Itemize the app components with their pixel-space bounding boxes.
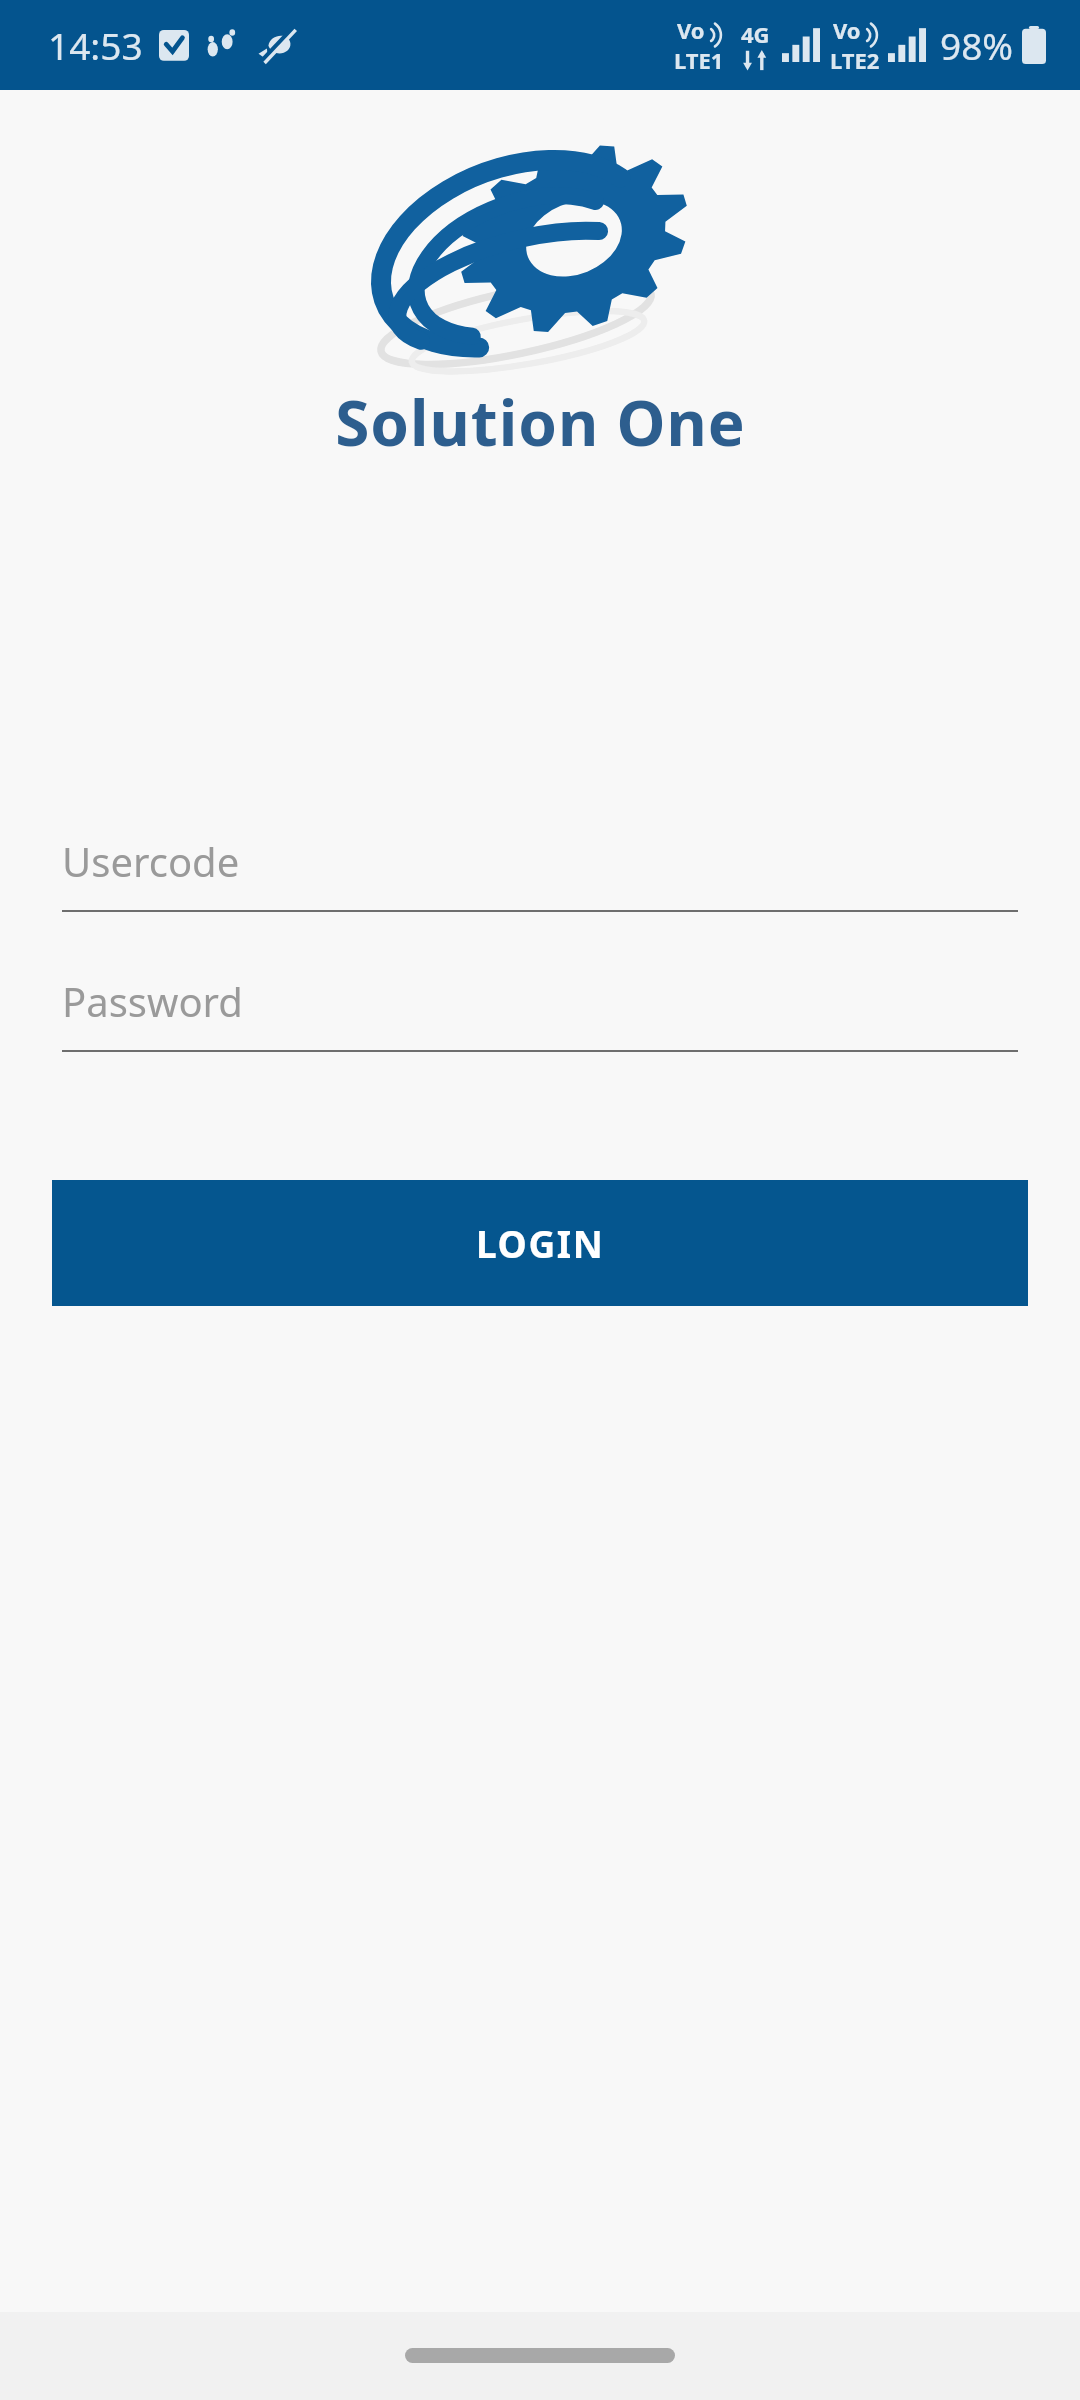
staticText: Solution One bbox=[335, 380, 746, 464]
staticText: LOGIN bbox=[476, 1218, 605, 1268]
staticText: LTE1 bbox=[674, 45, 724, 75]
button[interactable]: Usercode bbox=[62, 834, 1018, 912]
staticText: LTE2 bbox=[830, 45, 880, 75]
staticText: Password bbox=[62, 974, 243, 1028]
staticText: 14:53 bbox=[48, 20, 143, 70]
staticText: Vo bbox=[833, 15, 861, 45]
staticText: 4G bbox=[741, 19, 770, 49]
staticText: Vo bbox=[677, 15, 705, 45]
button[interactable]: Password bbox=[62, 974, 1018, 1052]
button[interactable]: LOGIN bbox=[52, 1180, 1028, 1306]
staticText: Usercode bbox=[62, 834, 240, 888]
staticText: 98% bbox=[940, 20, 1014, 70]
